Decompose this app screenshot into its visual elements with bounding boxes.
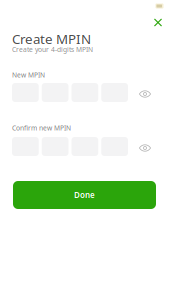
staticText: Done — [74, 190, 95, 200]
button[interactable]: Close — [147, 11, 169, 33]
staticText: Confirm new MPIN — [12, 123, 71, 132]
staticText: New MPIN — [12, 70, 45, 79]
staticText: Create MPIN — [12, 30, 91, 48]
button[interactable]: Show confirm MPIN — [135, 138, 155, 158]
button[interactable]: Show MPIN — [135, 84, 155, 104]
staticText: Create your 4-digits MPIN — [12, 45, 93, 54]
button[interactable]: Done — [13, 181, 156, 209]
